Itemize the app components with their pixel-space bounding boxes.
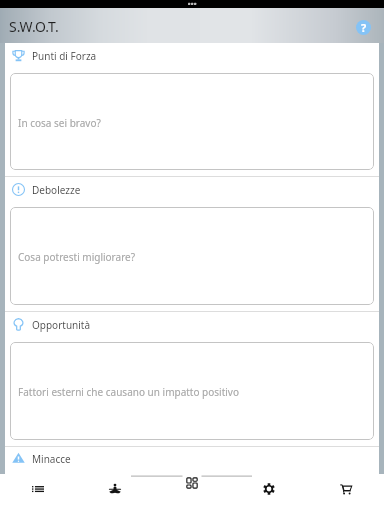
button[interactable]: Fattori esterni che causano un impatto p… xyxy=(10,342,374,440)
staticText: Punti di Forza xyxy=(32,49,97,63)
staticText: In cosa sei bravo? xyxy=(18,116,101,130)
button[interactable]: List xyxy=(0,474,76,512)
staticText: ? xyxy=(361,20,367,35)
button[interactable]: Help xyxy=(356,20,371,35)
staticText: Cosa potresti migliorare? xyxy=(18,250,136,264)
button[interactable]: In cosa sei bravo? xyxy=(10,73,374,170)
button[interactable]: Self improvement xyxy=(76,474,153,512)
staticText: Fattori esterni che causano un impatto p… xyxy=(18,385,239,399)
button[interactable]: Settings xyxy=(230,474,307,512)
button[interactable]: Cosa potresti migliorare? xyxy=(10,207,374,305)
button[interactable]: Dashboard xyxy=(153,474,230,512)
staticText: S.W.O.T. xyxy=(9,17,59,36)
button[interactable]: Shop xyxy=(307,474,384,512)
staticText: Opportunità xyxy=(32,318,91,332)
staticText: Debolezze xyxy=(32,183,81,197)
staticText: Minacce xyxy=(32,452,71,466)
